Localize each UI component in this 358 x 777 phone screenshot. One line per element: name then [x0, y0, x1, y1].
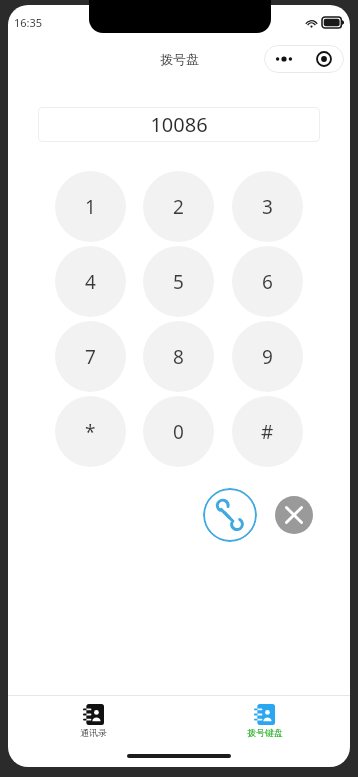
- staticText: 16:35: [14, 15, 43, 30]
- button[interactable]: 3: [232, 171, 303, 242]
- button[interactable]: #: [232, 396, 303, 467]
- staticText: 3: [262, 194, 273, 220]
- button[interactable]: 8: [143, 321, 214, 392]
- button[interactable]: 5: [143, 246, 214, 317]
- staticText: 1: [85, 194, 96, 220]
- button[interactable]: Delete: [275, 496, 313, 534]
- staticText: 10086: [150, 111, 208, 138]
- button[interactable]: 9: [232, 321, 303, 392]
- staticText: 拨号盘: [160, 51, 199, 67]
- staticText: 6: [262, 269, 273, 295]
- button[interactable]: Menu and close: [264, 45, 344, 73]
- staticText: 8: [173, 344, 184, 370]
- staticText: 5: [173, 269, 184, 295]
- button[interactable]: 7: [55, 321, 126, 392]
- button[interactable]: Call: [203, 488, 257, 542]
- staticText: 2: [173, 194, 184, 220]
- staticText: 4: [85, 269, 96, 295]
- button[interactable]: 通讯录: [8, 696, 179, 745]
- button[interactable]: 拨号键盘: [179, 696, 350, 745]
- button[interactable]: 0: [143, 396, 214, 467]
- button[interactable]: 1: [55, 171, 126, 242]
- staticText: 0: [173, 419, 184, 445]
- staticText: 7: [85, 344, 96, 370]
- button[interactable]: 6: [232, 246, 303, 317]
- button[interactable]: 2: [143, 171, 214, 242]
- staticText: 通讯录: [80, 727, 107, 738]
- button[interactable]: *: [55, 396, 126, 467]
- button[interactable]: 4: [55, 246, 126, 317]
- staticText: 拨号键盘: [247, 727, 283, 738]
- staticText: *: [85, 419, 96, 445]
- staticText: #: [261, 419, 274, 445]
- staticText: 9: [262, 344, 273, 370]
- button[interactable]: 10086: [38, 107, 320, 142]
